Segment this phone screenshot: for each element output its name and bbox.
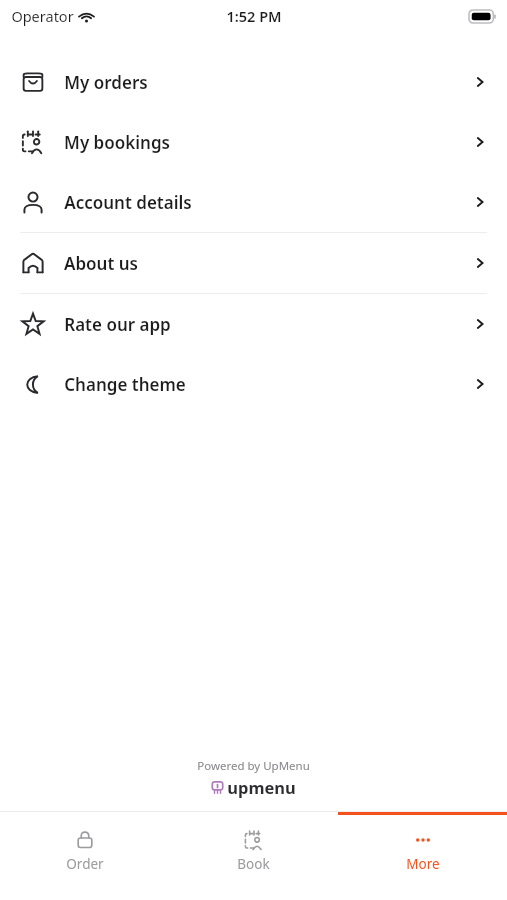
staticText: Order	[66, 855, 104, 873]
staticText: Operator	[11, 6, 74, 26]
staticText: upmenu	[227, 776, 296, 798]
staticText: Account details	[64, 191, 192, 214]
staticText: Change theme	[64, 373, 186, 396]
button[interactable]: My orders	[0, 52, 507, 112]
button[interactable]: Account details	[0, 172, 507, 232]
button[interactable]: Change theme	[0, 354, 507, 414]
button[interactable]: More	[338, 812, 507, 900]
staticText: Powered by UpMenu	[197, 758, 310, 774]
button[interactable]: My bookings	[0, 112, 507, 172]
staticText: My bookings	[64, 131, 170, 154]
button[interactable]: Order	[0, 812, 169, 900]
staticText: More	[406, 855, 440, 873]
staticText: Rate our app	[64, 313, 171, 336]
staticText: My orders	[64, 71, 148, 94]
button[interactable]: Rate our app	[0, 294, 507, 354]
staticText: 1:52 PM	[226, 6, 282, 26]
staticText: Book	[237, 855, 270, 873]
button[interactable]: About us	[0, 233, 507, 293]
staticText: About us	[64, 252, 138, 275]
button[interactable]: Book	[169, 812, 338, 900]
